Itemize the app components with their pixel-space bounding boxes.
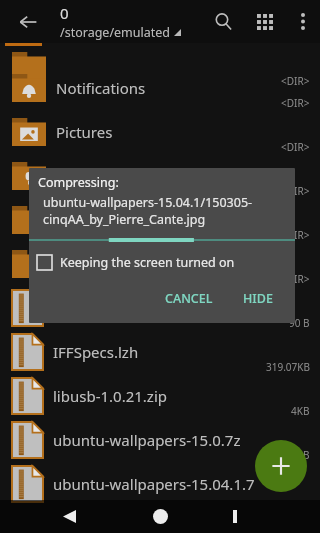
staticText: Pictures	[56, 122, 113, 142]
button[interactable]: Add	[255, 440, 307, 492]
staticText: <DIR>	[281, 184, 310, 198]
staticText: Notifications	[56, 78, 146, 98]
button[interactable]: ubuntu-wallpapers-15.0.7z	[0, 418, 320, 462]
button[interactable]: Back	[6, 0, 50, 43]
staticText: ubuntu-wallpapers-15.04.1/150305-cinqAA_…	[43, 194, 289, 228]
button[interactable]: Home	[143, 500, 177, 533]
staticText: HIDE	[243, 290, 273, 307]
staticText: <DIR>	[281, 74, 310, 88]
staticText: <DIR>	[281, 140, 310, 154]
button[interactable]: Notifications	[0, 66, 320, 110]
button[interactable]: 0	[60, 3, 181, 41]
staticText: <DIR>	[281, 228, 310, 242]
button[interactable]: CANCEL	[157, 286, 221, 311]
staticText: /storage/emulated	[60, 24, 170, 41]
staticText: 0	[60, 3, 69, 23]
button[interactable]: Search	[203, 0, 243, 43]
button[interactable]: Grid view	[245, 0, 285, 43]
button[interactable]: Recents	[218, 500, 252, 533]
staticText: 2.36MB	[274, 448, 310, 462]
staticText: <DIR>	[281, 272, 310, 286]
button[interactable]: libusb-1.0.21.zip	[0, 374, 320, 418]
staticText: Compressing:	[38, 174, 119, 191]
staticText: ubuntu-wallpapers-15.04.1.7	[53, 474, 255, 494]
button[interactable]: Back	[52, 500, 86, 533]
staticText: Keeping the screen turned on	[60, 254, 235, 271]
staticText: <DIR>	[281, 96, 310, 110]
button[interactable]: Download.7z	[0, 286, 320, 330]
button[interactable]	[0, 198, 320, 242]
staticText: 4KB	[291, 404, 310, 418]
staticText: 319.07KB	[266, 360, 310, 374]
staticText: Podcasts	[56, 166, 119, 186]
staticText: ubuntu-wallpapers-15.0.7z	[53, 430, 241, 450]
staticText: IFFSpecs.lzh	[53, 342, 139, 362]
button[interactable]: More options	[286, 0, 320, 43]
button[interactable]: Pictures	[0, 110, 320, 154]
button[interactable]: Keeping the screen turned on	[37, 254, 235, 271]
staticText: CANCEL	[165, 290, 213, 307]
button[interactable]	[0, 44, 320, 88]
button[interactable]	[0, 242, 320, 286]
button[interactable]: IFFSpecs.lzh	[0, 330, 320, 374]
button[interactable]: HIDE	[235, 286, 281, 311]
button[interactable]: Podcasts	[0, 154, 320, 198]
button[interactable]: ubuntu-wallpapers-15.04.1.7	[0, 462, 320, 506]
staticText: 90 B	[289, 316, 310, 330]
staticText: libusb-1.0.21.zip	[53, 386, 168, 406]
